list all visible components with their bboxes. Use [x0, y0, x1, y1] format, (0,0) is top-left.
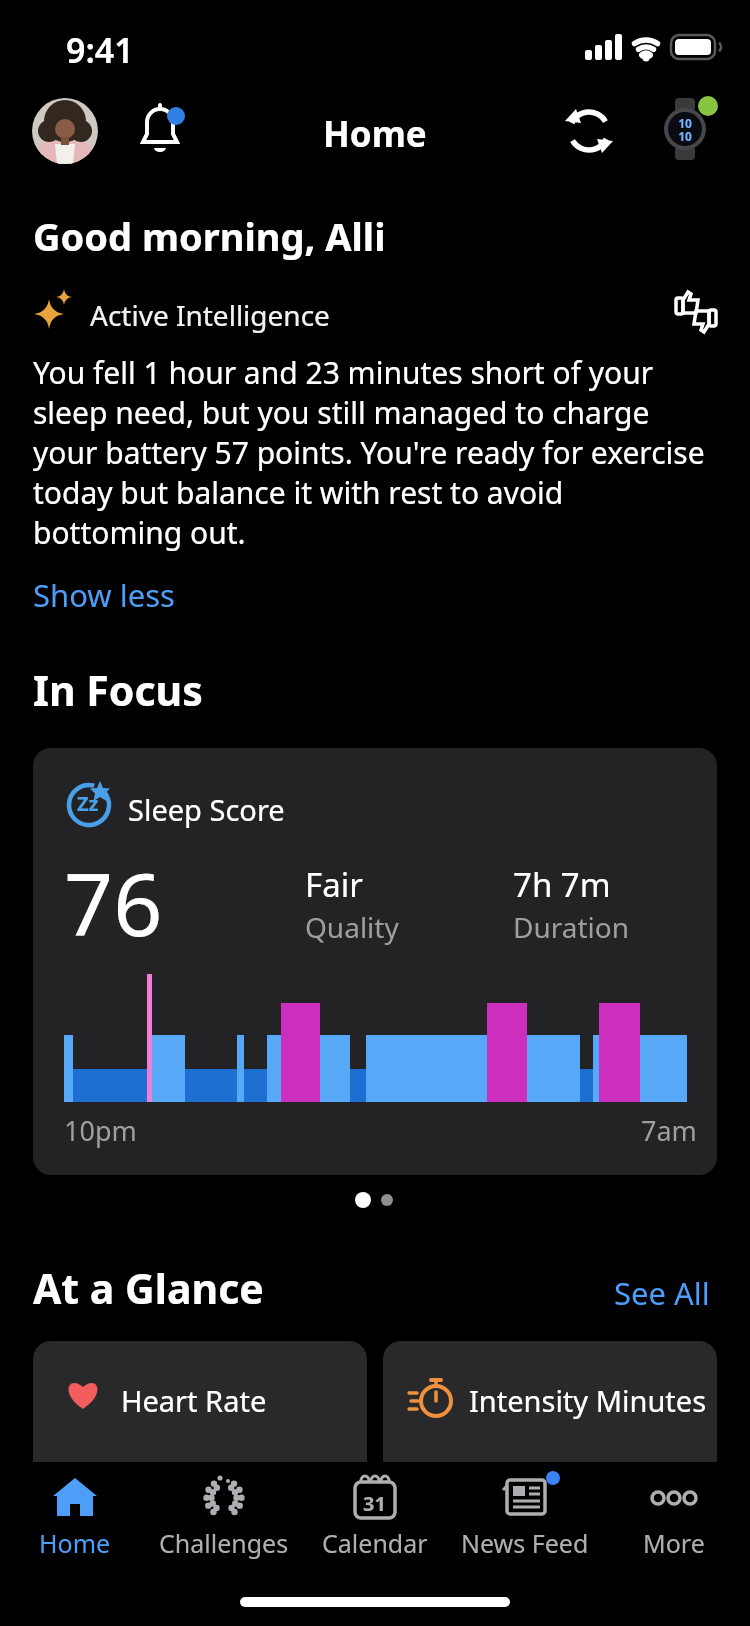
staticText: Good morning, Alli [33, 210, 386, 262]
button[interactable]: News Feed [451, 1468, 599, 1568]
button[interactable]: More [600, 1468, 748, 1568]
staticText: 9:41 [66, 27, 134, 73]
staticText: Duration [513, 908, 630, 946]
staticText: Intensity Minutes [469, 1381, 707, 1420]
button[interactable]: Show less [33, 574, 175, 616]
staticText: 7h 7m [513, 862, 611, 907]
button[interactable] [562, 104, 616, 158]
staticText: You fell 1 hour and 23 minutes short of … [33, 352, 705, 553]
staticText: In Focus [33, 662, 203, 718]
button[interactable] [674, 290, 718, 334]
staticText: At a Glance [33, 1260, 264, 1316]
button[interactable]: Zz [33, 748, 717, 1175]
staticText: Sleep Score [128, 790, 285, 829]
button[interactable]: 31 [301, 1468, 449, 1568]
staticText: See All [614, 1272, 710, 1314]
staticText: Active Intelligence [90, 296, 330, 334]
staticText: 10 10 [678, 115, 692, 143]
staticText: Fair [305, 862, 363, 907]
button[interactable]: Home [1, 1468, 149, 1568]
staticText: More [643, 1526, 705, 1560]
staticText: Challenges [159, 1526, 289, 1560]
button[interactable]: See All [614, 1272, 710, 1314]
staticText: Calendar [322, 1526, 428, 1560]
button[interactable] [32, 98, 98, 164]
staticText: Zz [77, 790, 99, 817]
staticText: Heart Rate [121, 1381, 267, 1420]
staticText: Home [39, 1526, 111, 1560]
button[interactable] [136, 100, 192, 156]
staticText: 7am [641, 1112, 697, 1149]
button[interactable]: Heart Rate [33, 1341, 367, 1462]
staticText: 10pm [64, 1112, 137, 1149]
button[interactable]: Challenges [150, 1468, 298, 1568]
button[interactable]: 10 10 [652, 96, 718, 162]
staticText: 31 [363, 1490, 386, 1517]
staticText: 76 [64, 844, 163, 961]
staticText: News Feed [461, 1526, 589, 1560]
staticText: Quality [305, 908, 399, 946]
staticText: Home [323, 110, 427, 158]
button[interactable]: Intensity Minutes [383, 1341, 717, 1462]
